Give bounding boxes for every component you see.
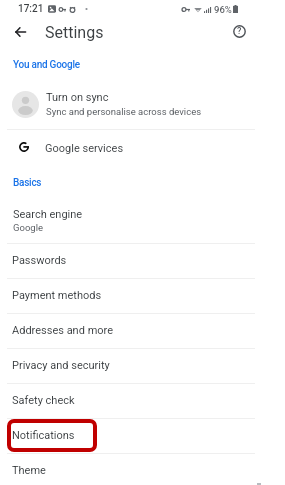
staticText: Search engine bbox=[13, 208, 83, 221]
staticText: 17:21 bbox=[18, 3, 44, 15]
staticText: Safety check bbox=[12, 394, 75, 407]
staticText: Theme bbox=[12, 464, 46, 477]
button[interactable]: Payment methods bbox=[0, 279, 285, 313]
button[interactable]: Search engine bbox=[0, 198, 285, 243]
staticText: ? bbox=[237, 26, 242, 37]
staticText: Sync and personalise across devices bbox=[46, 106, 202, 117]
button[interactable]: Google services bbox=[0, 130, 285, 168]
staticText: Basics bbox=[13, 177, 42, 189]
staticText: You and Google bbox=[13, 59, 80, 71]
button[interactable]: Theme bbox=[0, 454, 285, 485]
staticText: Google services bbox=[45, 142, 124, 155]
button[interactable]: Privacy and security bbox=[0, 349, 285, 383]
staticText: Payment methods bbox=[12, 289, 102, 302]
staticText: Addresses and more bbox=[12, 324, 114, 337]
staticText: Passwords bbox=[12, 254, 67, 267]
button[interactable]: Help bbox=[226, 18, 253, 45]
button[interactable]: Turn on sync bbox=[0, 80, 285, 129]
staticText: 96% bbox=[214, 4, 232, 15]
staticText: Google bbox=[13, 222, 43, 233]
staticText: Notifications bbox=[12, 429, 75, 442]
button[interactable]: Passwords bbox=[0, 244, 285, 278]
staticText: Privacy and security bbox=[12, 359, 110, 372]
button[interactable]: Notifications bbox=[0, 419, 285, 453]
button[interactable]: Addresses and more bbox=[0, 314, 285, 348]
button[interactable]: Back bbox=[7, 18, 33, 45]
staticText: Settings bbox=[45, 23, 104, 42]
button[interactable]: Safety check bbox=[0, 384, 285, 418]
staticText: Turn on sync bbox=[46, 91, 109, 104]
